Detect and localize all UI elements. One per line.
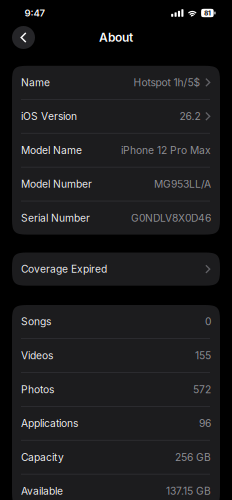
staticText: Available <box>21 485 63 497</box>
staticText: iPhone 12 Pro Max <box>121 144 211 156</box>
staticText: Capacity <box>21 451 64 463</box>
staticText: Songs <box>21 315 51 328</box>
staticText: Model Name <box>21 144 82 156</box>
staticText: 137.15 GB <box>166 485 211 497</box>
staticText: 81 <box>204 9 211 17</box>
staticText: Photos <box>21 383 54 396</box>
button[interactable]: Model Name <box>12 134 220 167</box>
button[interactable]: Videos <box>12 339 220 372</box>
button[interactable]: Capacity <box>12 441 220 474</box>
button[interactable]: Model Number <box>12 167 220 201</box>
button[interactable]: Available <box>12 474 220 500</box>
button[interactable]: Serial Number <box>12 201 220 235</box>
button[interactable]: Applications <box>12 407 220 440</box>
staticText: MG953LL/A <box>154 178 211 190</box>
staticText: 96 <box>199 417 211 429</box>
staticText: About <box>99 30 133 45</box>
button[interactable]: iOS Version <box>12 100 220 133</box>
staticText: 572 <box>193 383 211 396</box>
button[interactable]: Back <box>12 26 35 49</box>
staticText: G0NDLV8X0D46 <box>131 212 211 224</box>
staticText: 0 <box>205 315 211 328</box>
staticText: 155 <box>195 349 211 362</box>
staticText: 256 GB <box>175 451 211 463</box>
staticText: iOS Version <box>21 110 77 122</box>
staticText: Serial Number <box>21 212 90 224</box>
button[interactable]: Name <box>12 66 220 99</box>
button[interactable]: Coverage Expired <box>12 252 220 286</box>
button[interactable]: Photos <box>12 373 220 406</box>
staticText: 9:47 <box>24 7 45 19</box>
staticText: Hotspot 1h/5$ <box>134 76 201 89</box>
staticText: Videos <box>21 349 53 362</box>
staticText: Name <box>21 76 50 89</box>
staticText: Applications <box>21 417 78 429</box>
staticText: Model Number <box>21 178 92 190</box>
button[interactable]: Songs <box>12 305 220 338</box>
staticText: Coverage Expired <box>21 263 107 275</box>
staticText: 26.2 <box>180 110 201 122</box>
